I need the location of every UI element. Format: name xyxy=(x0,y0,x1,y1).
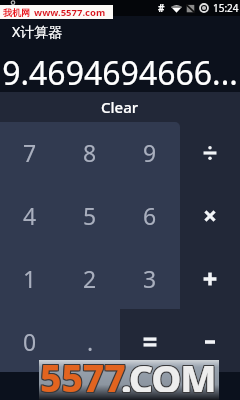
button[interactable]: Minus xyxy=(180,311,240,373)
staticText: 9 xyxy=(143,137,157,168)
staticText: .COM xyxy=(122,352,217,392)
staticText: .COM xyxy=(122,353,217,393)
button[interactable]: . xyxy=(60,310,120,373)
button[interactable]: 2 xyxy=(60,247,120,310)
button[interactable]: 7 xyxy=(0,121,60,184)
staticText: .COM xyxy=(121,352,216,392)
staticText: . xyxy=(87,326,94,357)
staticText: .COM xyxy=(120,351,215,391)
staticText: 5 xyxy=(83,200,97,231)
staticText: 0 xyxy=(23,326,37,357)
button[interactable]: Plus xyxy=(180,248,240,310)
button[interactable]: Clear xyxy=(0,93,240,120)
staticText: .COM xyxy=(121,351,216,391)
button[interactable]: 1 xyxy=(0,247,60,310)
button[interactable]: 3 xyxy=(120,247,180,310)
staticText: 2 xyxy=(83,263,97,294)
button[interactable]: 4 xyxy=(0,184,60,247)
button[interactable]: 6 xyxy=(120,184,180,247)
staticText: 5577 xyxy=(41,352,127,392)
staticText: 6 xyxy=(143,200,157,231)
button[interactable]: 8 xyxy=(60,121,120,184)
staticText: 5577 xyxy=(40,352,126,392)
staticText: 1 xyxy=(23,263,37,294)
staticText: .COM xyxy=(120,353,215,393)
staticText: 5577 xyxy=(41,353,127,393)
staticText: .COM xyxy=(120,352,215,392)
staticText: 7 xyxy=(23,137,37,168)
staticText: 4 xyxy=(23,200,37,231)
staticText: # xyxy=(158,1,165,15)
button[interactable]: 9 xyxy=(120,121,180,184)
button[interactable]: Multiply xyxy=(180,185,240,247)
staticText: 5577 xyxy=(39,352,125,392)
staticText: Clear xyxy=(101,97,139,117)
staticText: .COM xyxy=(121,353,216,393)
staticText: 15:24 xyxy=(213,1,239,15)
staticText: 5577 xyxy=(39,353,125,393)
staticText: X计算器 xyxy=(12,22,63,41)
button[interactable]: Equals xyxy=(120,311,180,373)
staticText: 9.4694694666... xyxy=(2,51,238,95)
staticText: .COM xyxy=(122,351,217,391)
staticText: 8 xyxy=(83,137,97,168)
button[interactable]: Divide xyxy=(180,122,240,184)
staticText: 5577 xyxy=(39,351,125,391)
staticText: 5577 xyxy=(40,351,126,391)
staticText: www.5577.com xyxy=(34,6,106,19)
staticText: 我机网 xyxy=(3,7,30,18)
staticText: 3 xyxy=(143,263,157,294)
staticText: 5577 xyxy=(40,353,126,393)
staticText: 5577 xyxy=(41,351,127,391)
button[interactable]: 5 xyxy=(60,184,120,247)
button[interactable]: 0 xyxy=(0,310,60,373)
